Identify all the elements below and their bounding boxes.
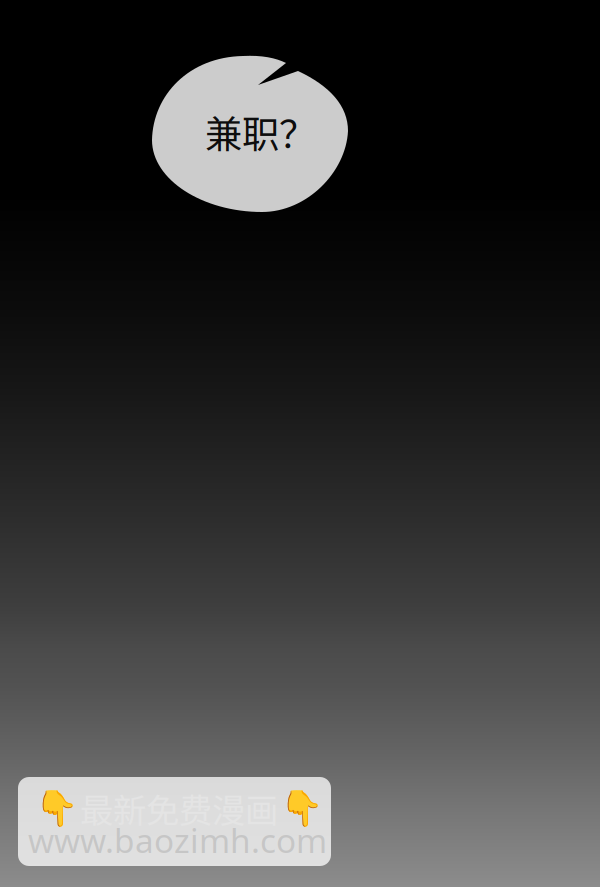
- button[interactable]: 最新免费漫画 www.baozimh.com: [18, 777, 331, 866]
- staticText: 兼职？: [205, 105, 316, 159]
- staticText: 最新免费漫画: [80, 784, 278, 832]
- staticText: 👇: [280, 788, 323, 828]
- staticText: 👇: [35, 788, 78, 828]
- staticText: www.baozimh.com: [28, 818, 327, 862]
